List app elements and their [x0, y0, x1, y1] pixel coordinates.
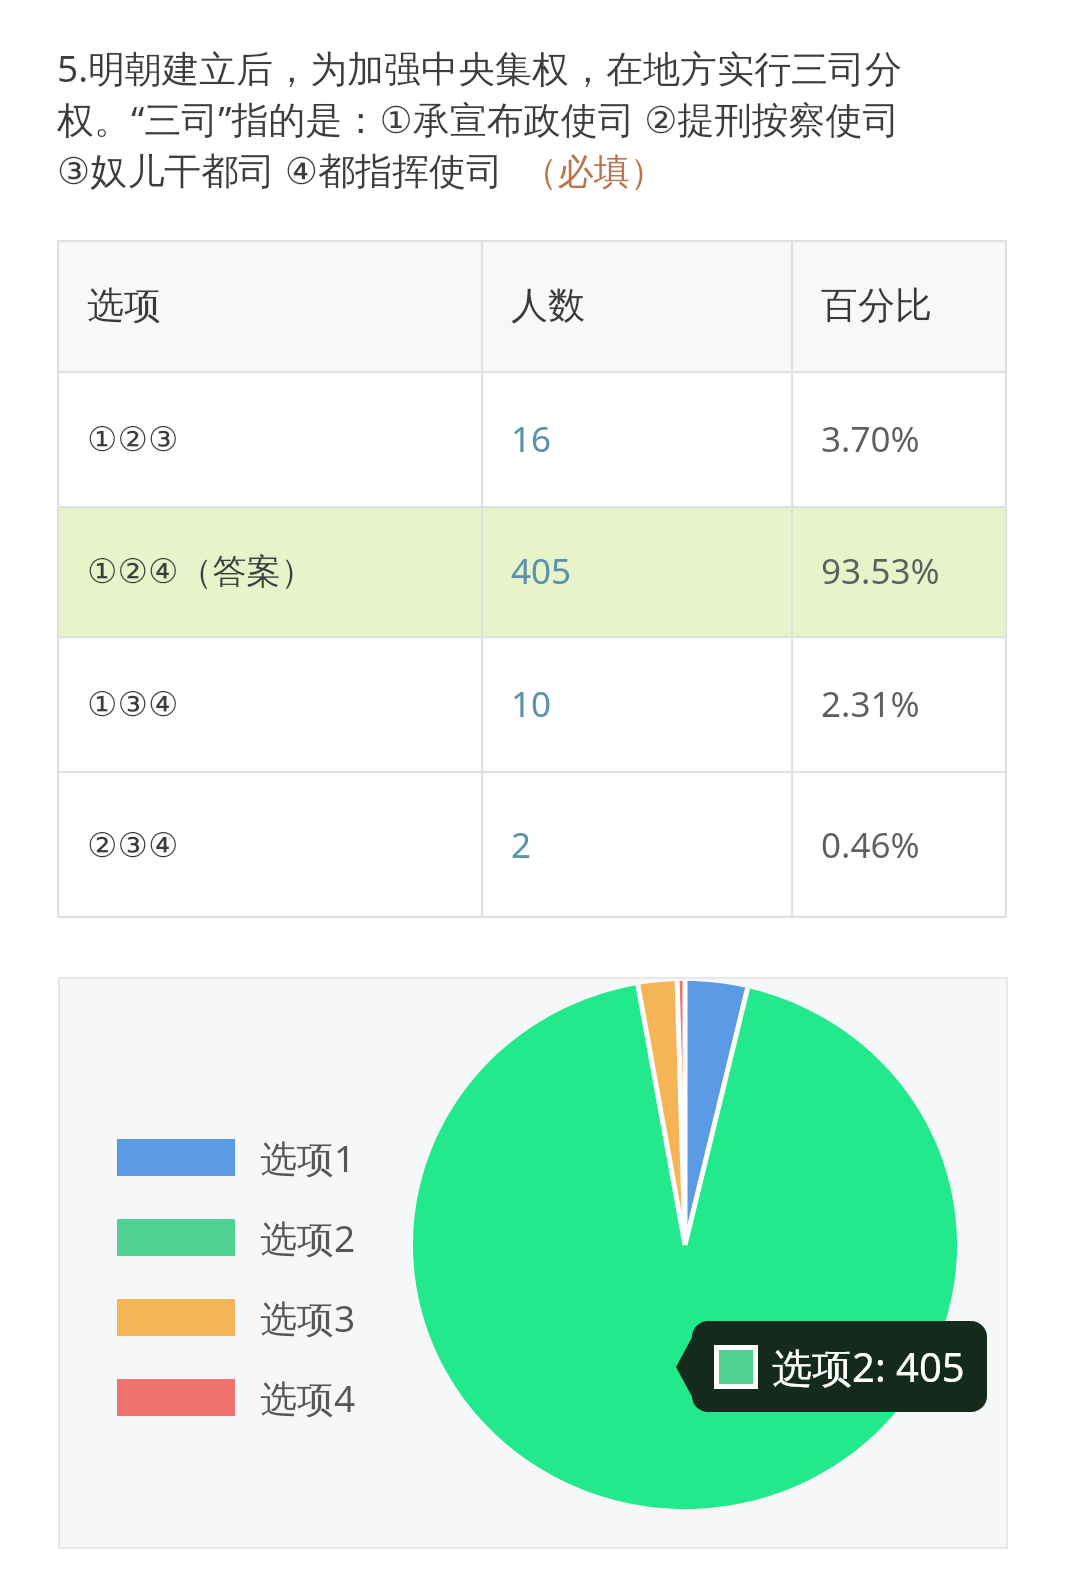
button[interactable]: 选项1 — [58, 977, 1008, 1549]
staticText: 选项3 — [260, 1292, 356, 1343]
staticText: ①②③ — [87, 419, 179, 459]
staticText: 人数 — [511, 282, 585, 329]
button[interactable]: 选项3 — [117, 1292, 356, 1343]
staticText: 10 — [511, 680, 552, 728]
staticText: ③奴儿干都司 ④都指挥使司 — [57, 144, 503, 195]
staticText: 百分比 — [821, 282, 932, 329]
other: 选项2: 405 — [714, 1339, 965, 1394]
staticText: 93.53% — [821, 547, 940, 595]
staticText: （必填） — [503, 146, 666, 195]
button[interactable]: 选项2 — [117, 1212, 356, 1263]
button[interactable]: 选项1 — [117, 1132, 356, 1183]
staticText: 16 — [511, 415, 552, 463]
staticText: 3.70% — [821, 415, 920, 463]
staticText: 权。“三司”指的是：①承宣布政使司 ②提刑按察使司 — [57, 93, 900, 144]
staticText: 0.46% — [821, 821, 920, 869]
button[interactable]: 选项4 — [117, 1372, 356, 1423]
staticText: 选项 — [87, 282, 161, 329]
staticText: 405 — [511, 547, 572, 595]
staticText: 选项4 — [260, 1372, 356, 1423]
button[interactable]: ①②③ — [57, 371, 1007, 506]
staticText: 选项2: 405 — [772, 1339, 965, 1394]
staticText: ①③④ — [87, 684, 179, 724]
button[interactable]: ②③④ — [57, 771, 1007, 918]
staticText: ②③④ — [87, 825, 179, 865]
button[interactable]: ①②④（答案） — [57, 506, 1007, 636]
staticText: 选项2 — [260, 1212, 356, 1263]
staticText: 2 — [511, 821, 532, 869]
button[interactable]: ①③④ — [57, 636, 1007, 771]
staticText: 2.31% — [821, 680, 920, 728]
staticText: 选项1 — [260, 1132, 356, 1183]
staticText: 5.明朝建立后，为加强中央集权，在地方实行三司分 — [57, 42, 903, 93]
staticText: ①②④（答案） — [87, 550, 315, 593]
